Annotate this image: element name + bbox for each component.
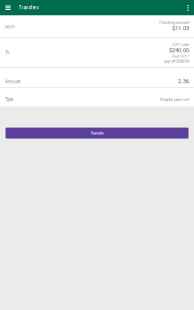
- staticText: Transfer: [90, 131, 103, 135]
- button[interactable]: From: [0, 15, 194, 38]
- staticText: Transfers: [18, 5, 38, 10]
- button[interactable]: Transfer: [5, 128, 188, 139]
- button[interactable]: Amount: [0, 68, 194, 88]
- staticText: Type: [5, 97, 13, 102]
- staticText: Regular payment: [160, 97, 189, 102]
- staticText: 2.36: [178, 78, 189, 85]
- button[interactable]: More options: [182, 0, 194, 15]
- button[interactable]: Menu: [0, 0, 16, 15]
- staticText: Amount: [5, 79, 20, 84]
- staticText: pay-off $240.00: [164, 59, 189, 64]
- staticText: From: [5, 24, 15, 30]
- staticText: $240.00: [169, 47, 189, 54]
- staticText: Checking account: [159, 20, 189, 25]
- staticText: $11.03: [172, 25, 189, 32]
- button[interactable]: Type: [0, 88, 194, 108]
- staticText: Due Oct 1: [172, 54, 189, 59]
- staticText: LOC Loan: [172, 42, 189, 47]
- staticText: To: [5, 50, 10, 55]
- button[interactable]: To: [0, 38, 194, 68]
